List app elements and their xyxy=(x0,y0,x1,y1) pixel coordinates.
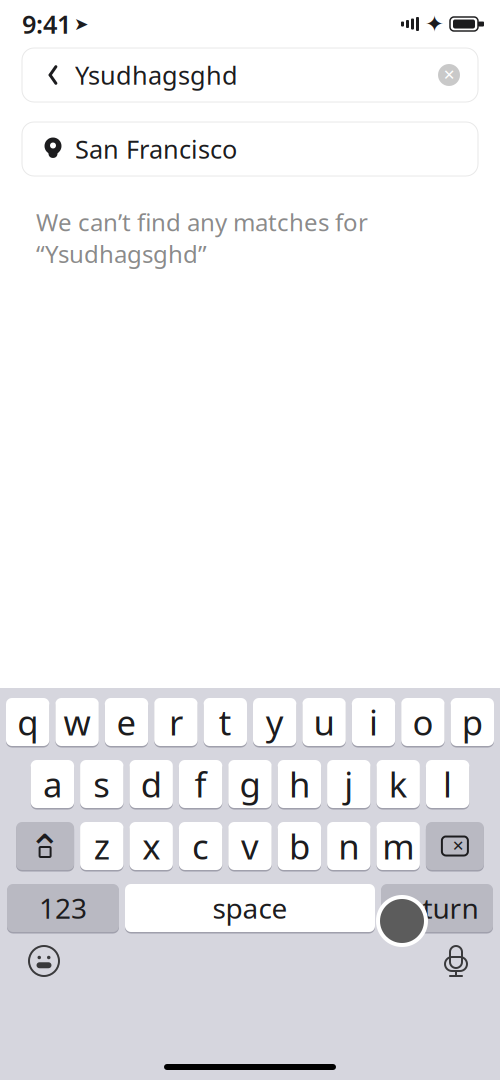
button[interactable]: Shift xyxy=(16,821,74,871)
button[interactable]: t xyxy=(204,697,247,747)
button[interactable]: k xyxy=(376,759,420,809)
staticText: u xyxy=(314,699,335,745)
button[interactable]: i xyxy=(352,697,395,747)
staticText: return xyxy=(395,889,478,927)
staticText: w xyxy=(64,699,91,745)
staticText: v xyxy=(241,823,259,869)
staticText: ➤ xyxy=(74,14,89,34)
button[interactable]: m xyxy=(376,821,420,871)
staticText: ⌃ xyxy=(28,826,62,872)
button[interactable]: f xyxy=(179,759,222,809)
button[interactable]: p xyxy=(451,697,494,747)
staticText: t xyxy=(219,699,232,745)
button[interactable]: d xyxy=(129,759,173,809)
staticText: o xyxy=(412,699,433,745)
button[interactable]: c xyxy=(179,821,222,871)
button[interactable]: w xyxy=(55,697,99,747)
staticText: b xyxy=(289,823,310,869)
staticText: 9:41 xyxy=(22,7,71,41)
staticText: s xyxy=(93,761,110,807)
staticText: p xyxy=(462,699,483,745)
staticText: g xyxy=(239,761,260,807)
staticText: z xyxy=(94,823,110,869)
staticText: c xyxy=(192,823,209,869)
staticText: San Francisco xyxy=(75,132,237,166)
staticText: j xyxy=(344,761,353,807)
button[interactable]: v xyxy=(228,821,272,871)
staticText: k xyxy=(389,761,408,807)
button[interactable]: z xyxy=(80,821,123,871)
staticText: l xyxy=(443,761,452,807)
button[interactable]: x xyxy=(129,821,173,871)
button[interactable]: Ysudhagsghd xyxy=(22,48,478,102)
button[interactable]: o xyxy=(401,697,445,747)
staticText: d xyxy=(141,761,162,807)
button[interactable]: a xyxy=(31,759,74,809)
button[interactable]: r xyxy=(154,697,198,747)
button[interactable]: San Francisco xyxy=(22,122,478,176)
staticText: f xyxy=(195,761,207,807)
button[interactable]: Return xyxy=(381,883,493,933)
staticText: Ysudhagsghd xyxy=(75,58,238,92)
button[interactable]: h xyxy=(278,759,321,809)
button[interactable]: u xyxy=(302,697,346,747)
button[interactable]: n xyxy=(327,821,370,871)
button[interactable]: b xyxy=(278,821,321,871)
button[interactable]: y xyxy=(253,697,296,747)
staticText: i xyxy=(369,699,378,745)
staticText: n xyxy=(338,823,359,869)
button[interactable]: g xyxy=(228,759,272,809)
button[interactable]: j xyxy=(327,759,370,809)
staticText: We can’t find any matches for “Ysudhagsg… xyxy=(36,206,368,270)
button[interactable]: q xyxy=(6,697,49,747)
staticText: ✕ xyxy=(452,838,464,854)
staticText: 123 xyxy=(39,889,87,927)
staticText: h xyxy=(289,761,310,807)
staticText: ✕ xyxy=(443,67,455,83)
button[interactable]: Numbers xyxy=(7,883,119,933)
staticText: ✦ xyxy=(425,11,444,37)
staticText: x xyxy=(142,823,160,869)
staticText: e xyxy=(116,699,136,745)
staticText: m xyxy=(382,823,414,869)
staticText: a xyxy=(43,761,62,807)
button[interactable]: l xyxy=(426,759,469,809)
staticText: y xyxy=(266,699,284,745)
staticText: r xyxy=(169,699,183,745)
button[interactable]: Dictation xyxy=(434,939,478,983)
button[interactable]: e xyxy=(105,697,148,747)
staticText: q xyxy=(17,699,38,745)
staticText: space xyxy=(212,889,287,927)
button[interactable]: s xyxy=(80,759,123,809)
button[interactable]: space xyxy=(125,883,375,933)
button[interactable]: Delete xyxy=(426,821,484,871)
button[interactable]: Emoji xyxy=(22,939,66,983)
